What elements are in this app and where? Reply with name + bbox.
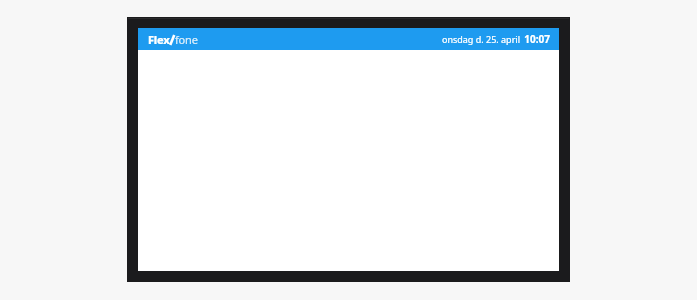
staticText: onsdag d. 25. april	[441, 33, 520, 45]
staticText: Flex	[148, 32, 170, 47]
staticText: fone	[175, 32, 198, 47]
button[interactable]: onsdag d. 25. april	[439, 30, 552, 48]
button[interactable]: Flex	[146, 30, 200, 49]
staticText: 10:07	[524, 32, 550, 46]
